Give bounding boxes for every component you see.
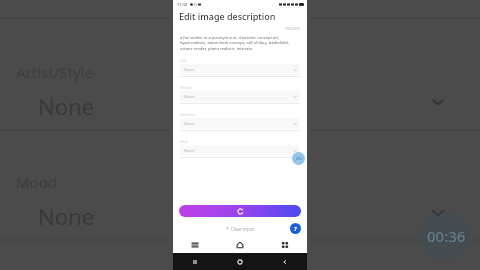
button[interactable]: Menu (173, 237, 217, 253)
staticText: Mood (180, 140, 189, 144)
button[interactable]: Recents (173, 253, 217, 270)
staticText: None (184, 121, 195, 126)
staticText: None (38, 201, 95, 231)
staticText: a fox soldier in a acronym suit, charact… (180, 35, 300, 52)
button[interactable]: × (226, 225, 255, 232)
staticText: None (184, 94, 195, 99)
staticText: Artist/Style (16, 62, 93, 82)
button[interactable]: Back (262, 253, 307, 270)
staticText: Medium (180, 86, 192, 90)
staticText: 00:36 (427, 226, 466, 246)
button[interactable]: Help (290, 223, 301, 234)
button[interactable]: Home (217, 237, 262, 253)
staticText: 64% (296, 157, 302, 161)
staticText: Edit image description (179, 10, 276, 22)
button[interactable]: Apps (262, 237, 307, 253)
staticText: Mood (16, 172, 57, 192)
staticText: Artist/Style (180, 113, 196, 117)
staticText: H (194, 2, 197, 7)
button[interactable]: None (180, 118, 300, 129)
staticText: None (184, 67, 195, 72)
button[interactable]: Home (217, 253, 262, 270)
staticText: None (184, 148, 195, 153)
staticText: Style (180, 59, 187, 63)
staticText: None (38, 91, 95, 121)
button[interactable]: Info (292, 152, 305, 165)
staticText: × (226, 225, 229, 232)
staticText: 11:32 (177, 2, 188, 7)
staticText: 1562-6693 (285, 27, 300, 31)
button[interactable]: None (180, 145, 300, 156)
button[interactable]: None (180, 64, 300, 75)
button[interactable]: None (180, 91, 300, 102)
staticText: Clear input (231, 226, 255, 232)
staticText: ? (294, 225, 297, 233)
button[interactable]: Generate (179, 205, 301, 217)
